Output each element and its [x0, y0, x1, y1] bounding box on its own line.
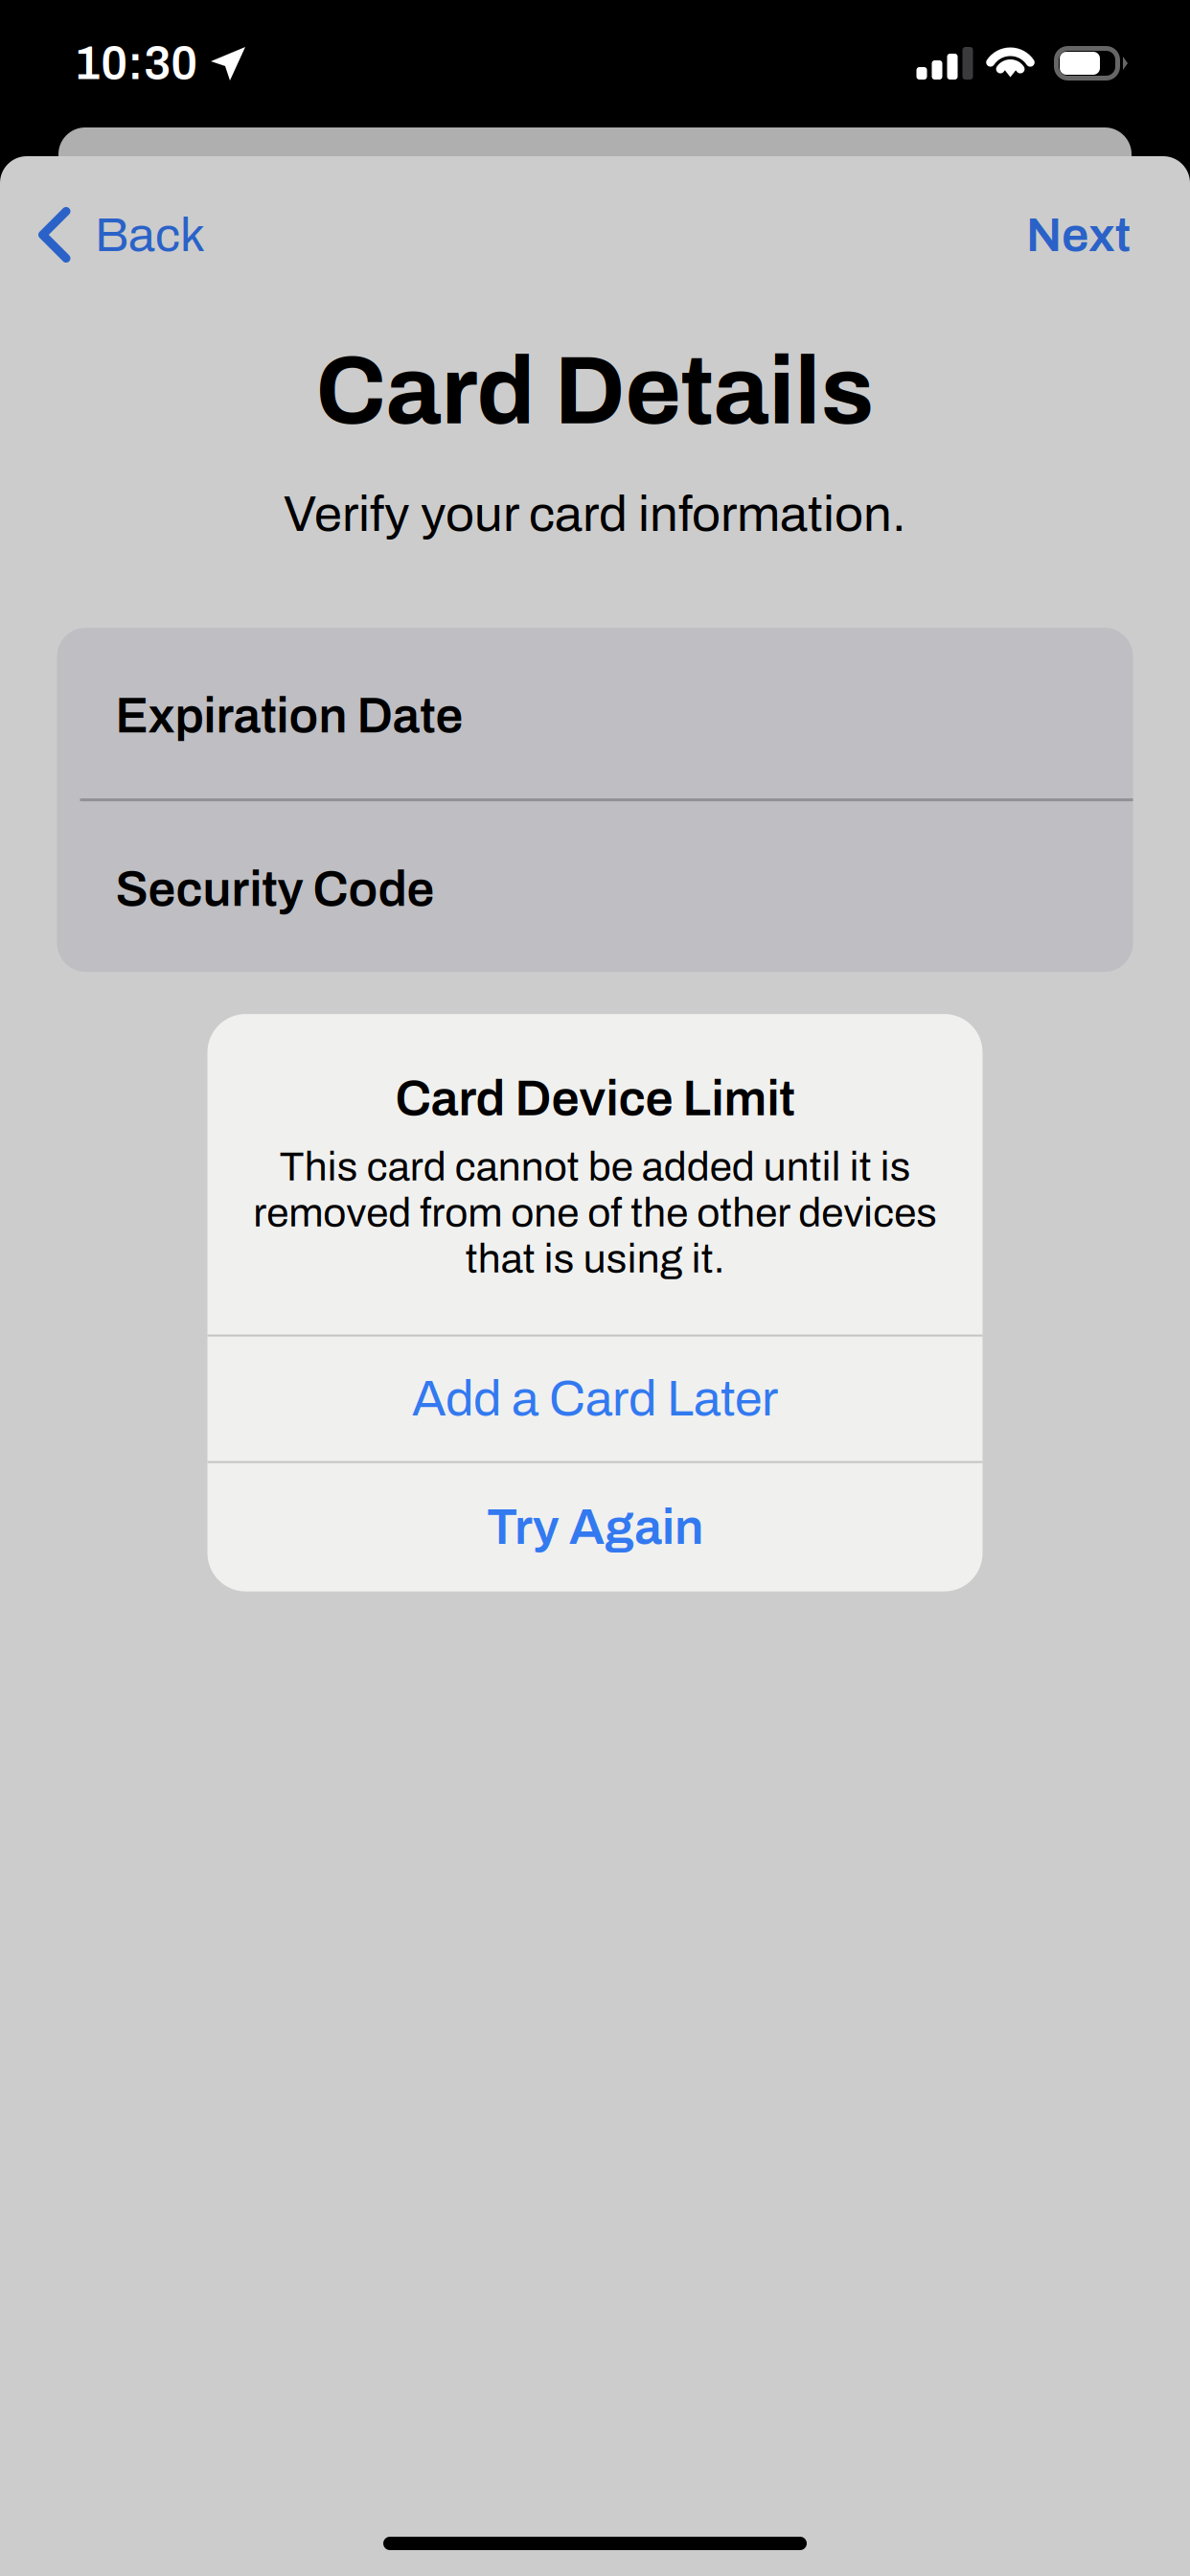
- staticText: Add a Card Later: [412, 1372, 778, 1426]
- staticText: Card Details: [316, 339, 874, 444]
- staticText: 10:30: [74, 38, 197, 89]
- staticText: Back: [95, 208, 205, 261]
- staticText: Verify your card information.: [284, 487, 906, 542]
- staticText: Security Code: [115, 863, 435, 916]
- staticText: Try Again: [487, 1500, 703, 1554]
- button[interactable]: Next: [988, 189, 1190, 281]
- staticText: Next: [1026, 208, 1131, 261]
- button[interactable]: Try Again: [207, 1463, 983, 1591]
- staticText: This card cannot be added until it is re…: [253, 1145, 937, 1281]
- button[interactable]: Expiration Date: [57, 628, 1133, 798]
- staticText: Card Device Limit: [395, 1072, 795, 1126]
- button[interactable]: Security Code: [57, 801, 1133, 972]
- staticText: Expiration Date: [115, 689, 463, 743]
- button[interactable]: Add a Card Later: [207, 1336, 983, 1461]
- button[interactable]: Back: [0, 189, 238, 281]
